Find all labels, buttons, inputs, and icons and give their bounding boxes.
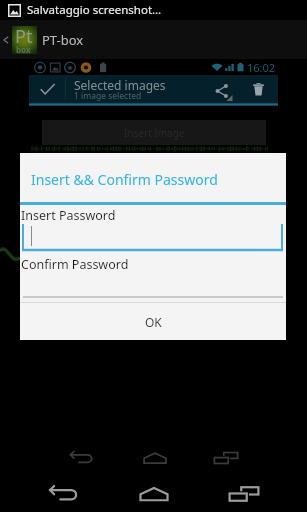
staticText: Insert && Confirm Password [31,170,218,189]
button[interactable]: Done [29,75,65,103]
staticText: Selected images [74,77,166,93]
staticText: Pt [15,24,33,49]
button[interactable]: Recent apps [206,438,246,478]
button[interactable]: Share [208,75,236,103]
staticText: 1 image selected [74,90,142,102]
staticText: 16:02 [247,60,276,75]
staticText: Salvataggio screenshot… [27,2,162,18]
button[interactable]: Delete [243,75,273,103]
button[interactable]: Recent apps [224,474,264,512]
button[interactable]: Navigate up [0,24,12,56]
staticText: box [16,44,31,55]
staticText: Insert Image [124,126,185,140]
button[interactable]: Back [43,474,83,512]
staticText: Confirm Password [21,256,129,273]
button[interactable]: Back [61,438,101,478]
button[interactable]: Home [134,474,174,512]
staticText: OK [145,314,162,330]
staticText: PT-box [42,31,84,49]
button[interactable]: Home [135,438,175,478]
staticText: Insert Password [21,207,116,224]
button[interactable]: OK [20,303,286,340]
